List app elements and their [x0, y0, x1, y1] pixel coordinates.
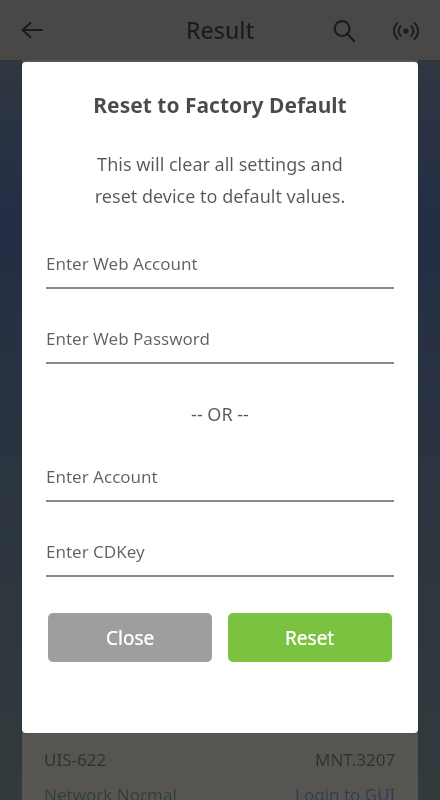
staticText: Enter Web Account [46, 252, 198, 275]
staticText: Enter Account [46, 465, 158, 488]
button[interactable]: Reset [228, 613, 392, 662]
button[interactable]: Search [322, 9, 366, 53]
staticText: Result [186, 14, 255, 45]
staticText: This will clear all settings and [22, 152, 418, 177]
staticText: UIS-622 [44, 748, 107, 771]
staticText: Login to GUI [295, 783, 396, 800]
button[interactable]: Close [48, 613, 212, 662]
staticText: MNT.3207 [315, 748, 396, 771]
button[interactable]: Enter Web Password [46, 327, 394, 364]
staticText: Enter CDKey [46, 540, 145, 563]
button[interactable]: Back [12, 10, 52, 50]
staticText: Close [106, 625, 155, 651]
staticText: reset device to default values. [22, 184, 418, 209]
staticText: Reset [285, 625, 335, 651]
button[interactable]: Enter Web Account [46, 252, 394, 289]
staticText: Enter Web Password [46, 327, 210, 350]
button[interactable]: Broadcast [384, 9, 428, 53]
staticText: Reset to Factory Default [22, 91, 418, 120]
button[interactable]: Enter CDKey [46, 540, 394, 577]
staticText: -- OR -- [22, 402, 418, 427]
staticText: Network Normal [44, 783, 177, 800]
button[interactable]: Enter Account [46, 465, 394, 502]
